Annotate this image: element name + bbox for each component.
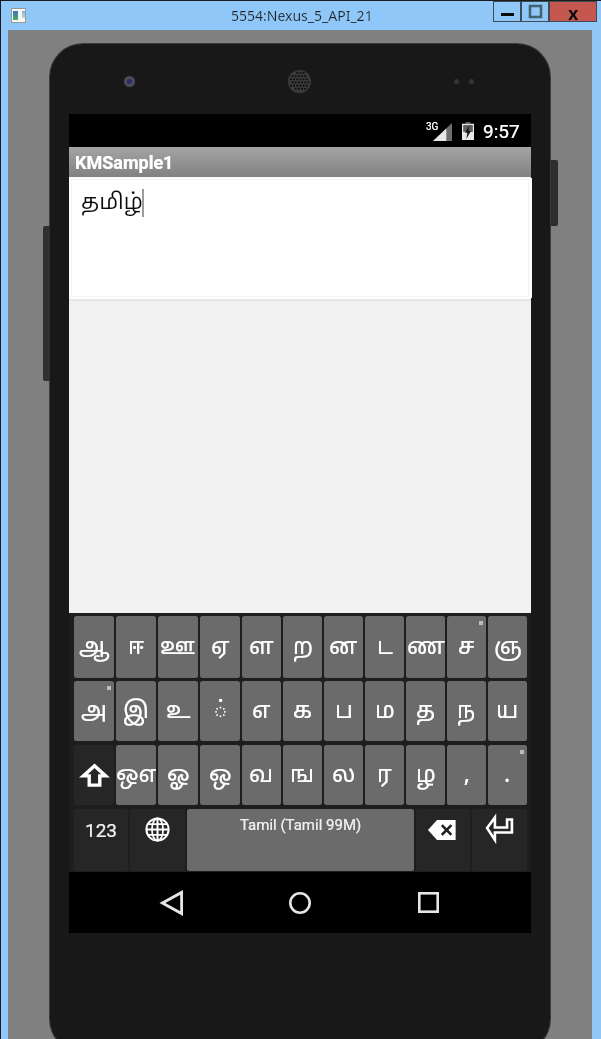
button[interactable]: ஊ [158,616,198,678]
button[interactable]: Back [137,872,207,933]
button[interactable]: உ [158,681,198,741]
button[interactable]: ட [365,616,404,678]
staticText: ன [329,634,358,663]
button[interactable]: ழ [406,745,445,805]
button[interactable]: Backspace [416,809,470,871]
staticText: . [504,762,511,791]
button[interactable]: Maximize [521,1,549,22]
staticText: இ [123,698,149,727]
staticText: ஓ [167,762,190,791]
button[interactable]: ஞ [488,616,527,678]
staticText: 9:57 [483,120,520,142]
button[interactable]: எ [242,681,281,741]
staticText: எ [252,698,271,727]
staticText: ட [377,634,393,663]
button[interactable]: ஓ [158,745,198,805]
staticText: x [568,1,579,22]
button[interactable]: ண [406,616,445,678]
button[interactable]: ள [242,616,281,678]
staticText: ஈ [128,634,145,663]
button[interactable]: வ [242,745,281,805]
button[interactable]: ஒ [200,745,240,805]
staticText: ஞ [494,634,522,663]
button[interactable]: ற [283,616,322,678]
staticText: தமிழ் [81,190,143,217]
staticText: ச [458,634,475,663]
staticText: ங [290,762,315,791]
staticText: ல [332,762,356,791]
button[interactable]: ன [324,616,363,678]
button[interactable]: . [488,745,527,805]
staticText: ள [249,634,274,663]
button[interactable]: ஆ [74,616,114,678]
button[interactable]: இ [116,681,156,741]
staticText: ஒ [209,762,232,791]
staticText: ஊ [160,634,196,663]
button[interactable]: Change language [130,809,185,871]
button[interactable]: Tamil (Tamil 99M) [187,809,414,871]
button[interactable]: Close [549,1,597,22]
button[interactable]: க [283,681,322,741]
staticText: KMSample1 [75,152,174,173]
staticText: Tamil (Tamil 99M) [240,816,362,834]
button[interactable]: Minimize [493,1,521,22]
staticText: ஔ [116,762,156,791]
staticText: ற [293,634,313,663]
staticText: ஆ [79,634,110,663]
button[interactable]: Home [265,872,335,933]
staticText: க [293,698,312,727]
button[interactable]: Enter [472,809,527,871]
button[interactable]: த [406,681,445,741]
staticText: 3G [426,121,439,133]
staticText: த [416,698,435,727]
button[interactable]: ர [365,745,404,805]
staticText: , [464,762,470,791]
button[interactable]: ச [447,616,486,678]
button[interactable]: ங [283,745,322,805]
button[interactable]: 123 [74,809,128,871]
staticText: ◌் [214,698,227,727]
staticText: ப [335,698,353,727]
staticText: 123 [85,819,118,841]
staticText: உ [166,698,191,727]
button[interactable]: Shift [74,745,114,805]
button[interactable]: ம [365,681,404,741]
button[interactable]: ஏ [200,616,240,678]
staticText: வ [249,762,274,791]
button[interactable]: ஈ [116,616,156,678]
button[interactable]: ◌் [200,681,240,741]
button[interactable]: Recents [393,872,463,933]
staticText: ம [375,698,395,727]
staticText: ண [407,634,445,663]
button[interactable]: அ [74,681,114,741]
button[interactable]: ல [324,745,363,805]
staticText: அ [81,698,107,727]
staticText: ர [377,762,392,791]
staticText: 5554:Nexus_5_API_21 [231,6,373,25]
button[interactable]: ப [324,681,363,741]
button[interactable]: ந [447,681,486,741]
staticText: ந [457,698,476,727]
staticText: ழ [416,762,436,791]
button[interactable]: ஔ [116,745,156,805]
staticText: ஏ [211,634,230,663]
staticText: ய [496,698,519,727]
button[interactable]: , [447,745,486,805]
button[interactable]: ய [488,681,527,741]
